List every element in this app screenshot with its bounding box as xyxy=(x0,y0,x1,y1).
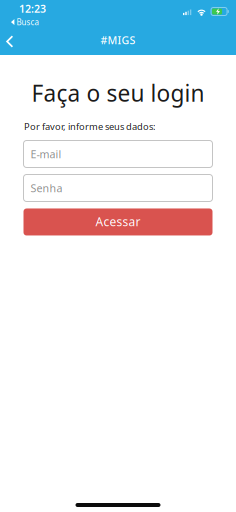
staticText: E-mail xyxy=(30,147,61,161)
button[interactable]: Acessar xyxy=(23,208,212,235)
staticText: #MIGS xyxy=(100,33,135,47)
staticText: 12:23 xyxy=(19,2,46,16)
button[interactable]: Back to Busca xyxy=(11,17,39,27)
staticText: Busca xyxy=(17,17,39,27)
staticText: Faça o seu login xyxy=(31,78,204,108)
staticText: Acessar xyxy=(95,213,140,229)
staticText: Por favor, informe seus dados: xyxy=(24,120,156,132)
staticText: Senha xyxy=(30,181,62,195)
button[interactable]: Back xyxy=(0,28,27,55)
